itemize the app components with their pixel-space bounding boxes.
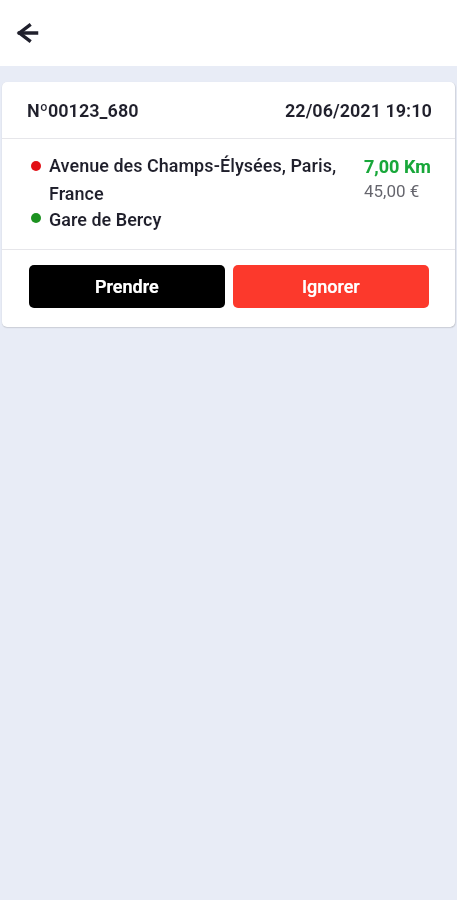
staticText: France — [49, 183, 104, 204]
staticText: 7,00 Km — [364, 156, 431, 177]
button[interactable]: Ignorer — [233, 265, 429, 308]
staticText: Prendre — [95, 276, 159, 297]
staticText: 22/06/2021 19:10 — [285, 100, 432, 121]
staticText: Gare de Bercy — [49, 209, 162, 230]
staticText: Nº00123_680 — [27, 100, 139, 121]
button[interactable]: Back — [6, 11, 50, 55]
staticText: Ignorer — [302, 276, 360, 297]
staticText: Avenue des Champs-Élysées, Paris, — [49, 155, 337, 176]
staticText: 45,00 € — [364, 181, 420, 201]
button[interactable]: Prendre — [29, 265, 225, 308]
